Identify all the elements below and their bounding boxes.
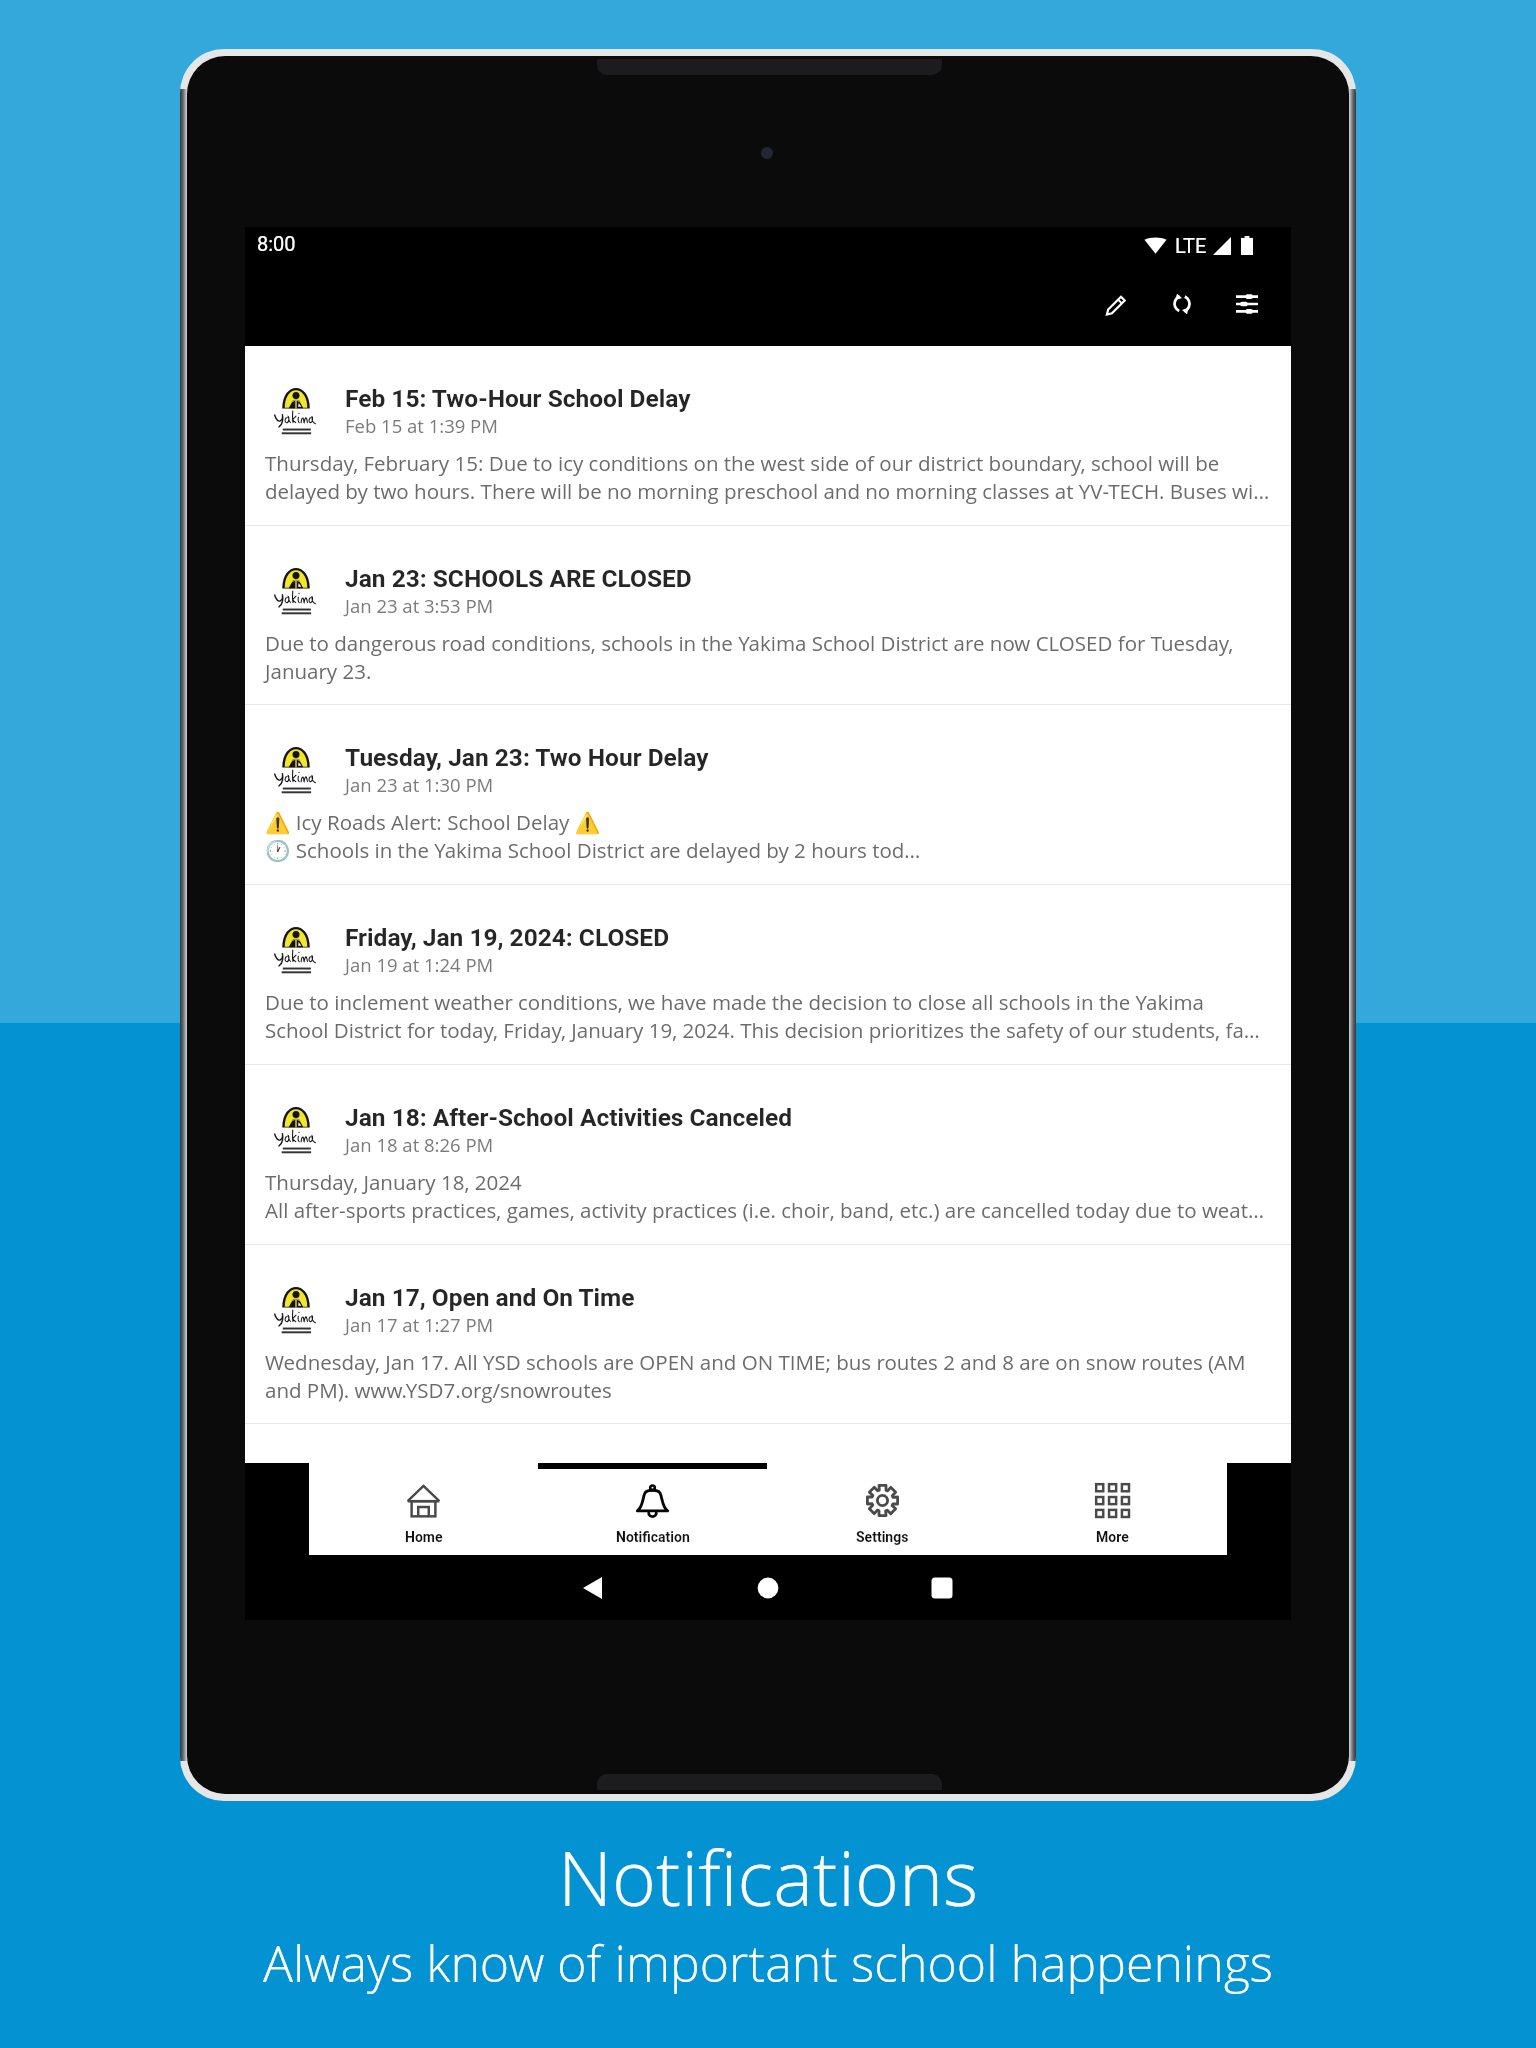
staticText: Thursday, January 18, 2024 <box>265 1168 522 1196</box>
staticText: Jan 23 at 1:30 PM <box>345 772 494 797</box>
staticText: Wednesday, Jan 17. All YSD schools are O… <box>265 1348 1246 1376</box>
staticText: and PM). www.YSD7.org/snowroutes <box>265 1376 612 1404</box>
staticText: Jan 17, Open and On Time <box>345 1283 635 1312</box>
staticText: Feb 15: Two-Hour School Delay <box>345 384 691 413</box>
button[interactable]: Edit <box>1091 278 1143 330</box>
staticText: Notifications <box>558 1826 979 1928</box>
staticText: Home <box>405 1529 443 1545</box>
staticText: Jan 17 at 1:27 PM <box>345 1312 494 1337</box>
button[interactable]: Friday, Jan 19, 2024: CLOSED <box>245 885 1291 1064</box>
staticText: delayed by two hours. There will be no m… <box>265 477 1270 505</box>
button[interactable]: Notification <box>538 1463 767 1555</box>
staticText: Jan 19 at 1:24 PM <box>345 952 494 977</box>
staticText: 🕐 Schools in the Yakima School District … <box>265 836 921 864</box>
staticText: Thursday, February 15: Due to icy condit… <box>265 449 1220 477</box>
button[interactable]: Tuesday, Jan 23: Two Hour Delay <box>245 705 1291 884</box>
button[interactable]: Jan 18: After-School Activities Canceled <box>245 1065 1291 1244</box>
staticText: Always know of important school happenin… <box>263 1929 1274 1997</box>
button[interactable]: Jan 23: SCHOOLS ARE CLOSED <box>245 526 1291 704</box>
staticText: All after-sports practices, games, activ… <box>265 1196 1265 1224</box>
staticText: Tuesday, Jan 23: Two Hour Delay <box>345 743 709 772</box>
button[interactable]: Settings <box>767 1463 997 1555</box>
button[interactable]: More <box>997 1463 1227 1555</box>
button[interactable]: Feb 15: Two-Hour School Delay <box>245 346 1291 525</box>
staticText: Friday, Jan 19, 2024: CLOSED <box>345 923 670 952</box>
staticText: January 23. <box>265 657 372 685</box>
staticText: Settings <box>856 1529 909 1545</box>
staticText: Jan 18 at 8:26 PM <box>345 1132 494 1157</box>
staticText: Jan 18: After-School Activities Canceled <box>345 1103 793 1132</box>
staticText: Notification <box>616 1529 690 1545</box>
staticText: 8:00 <box>257 232 296 255</box>
staticText: School District for today, Friday, Janua… <box>265 1016 1260 1044</box>
staticText: ⚠️ Icy Roads Alert: School Delay ⚠️ <box>265 808 601 836</box>
staticText: Feb 15 at 1:39 PM <box>345 413 498 438</box>
button[interactable]: Home <box>309 1463 538 1555</box>
staticText: Jan 23: SCHOOLS ARE CLOSED <box>345 564 692 593</box>
button[interactable]: Refresh <box>1156 278 1208 330</box>
staticText: Jan 23 at 3:53 PM <box>345 593 494 618</box>
staticText: Due to inclement weather conditions, we … <box>265 988 1204 1016</box>
staticText: LTE <box>1175 234 1207 257</box>
button[interactable]: Filter <box>1221 278 1273 330</box>
button[interactable]: Jan 17, Open and On Time <box>245 1245 1291 1423</box>
staticText: Due to dangerous road conditions, school… <box>265 629 1234 657</box>
staticText: More <box>1096 1529 1129 1545</box>
